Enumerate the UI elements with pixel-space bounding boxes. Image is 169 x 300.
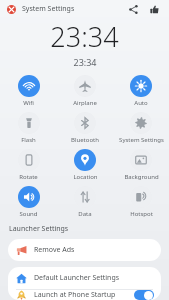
staticText: 23:34 (50, 18, 119, 55)
staticText: 23:34 (73, 56, 97, 68)
staticText: Bluetooth (71, 136, 99, 144)
button[interactable]: Flash (0, 109, 57, 146)
button[interactable]: Share (125, 1, 141, 17)
staticText: Background (124, 173, 159, 181)
button[interactable]: Default Launcher Settings (8, 267, 161, 289)
staticText: Flash (21, 136, 36, 144)
button[interactable]: Location (57, 146, 113, 183)
button[interactable]: Rotate (0, 146, 57, 183)
button[interactable]: Rate (146, 1, 162, 17)
button[interactable]: Data (57, 183, 113, 220)
button[interactable]: Auto (113, 72, 169, 109)
staticText: Rotate (19, 173, 38, 181)
staticText: System Settings (119, 136, 164, 144)
staticText: Airplane (73, 99, 97, 107)
button[interactable]: Launch at Phone Startup toggle (134, 290, 154, 300)
button[interactable]: Launch at Phone Startup (8, 290, 161, 300)
button[interactable]: Wifi (0, 72, 57, 109)
button[interactable]: Bluetooth (57, 109, 113, 146)
button[interactable]: System Settings (113, 109, 169, 146)
button[interactable]: Sound (0, 183, 57, 220)
staticText: Hotspot (130, 210, 153, 218)
staticText: System Settings (22, 4, 75, 14)
staticText: Default Launcher Settings (34, 273, 120, 283)
button[interactable]: Background (113, 146, 169, 183)
staticText: Sound (19, 210, 38, 218)
staticText: Data (78, 210, 92, 218)
staticText: Auto (134, 99, 148, 107)
button[interactable]: Airplane (57, 72, 113, 109)
staticText: Location (73, 173, 98, 181)
staticText: Launch at Phone Startup (34, 290, 116, 300)
staticText: Launcher Settings (9, 224, 69, 234)
button[interactable]: Remove Ads (8, 239, 161, 261)
button[interactable]: Hotspot (113, 183, 169, 220)
staticText: Wifi (23, 99, 34, 107)
staticText: Remove Ads (34, 245, 75, 255)
